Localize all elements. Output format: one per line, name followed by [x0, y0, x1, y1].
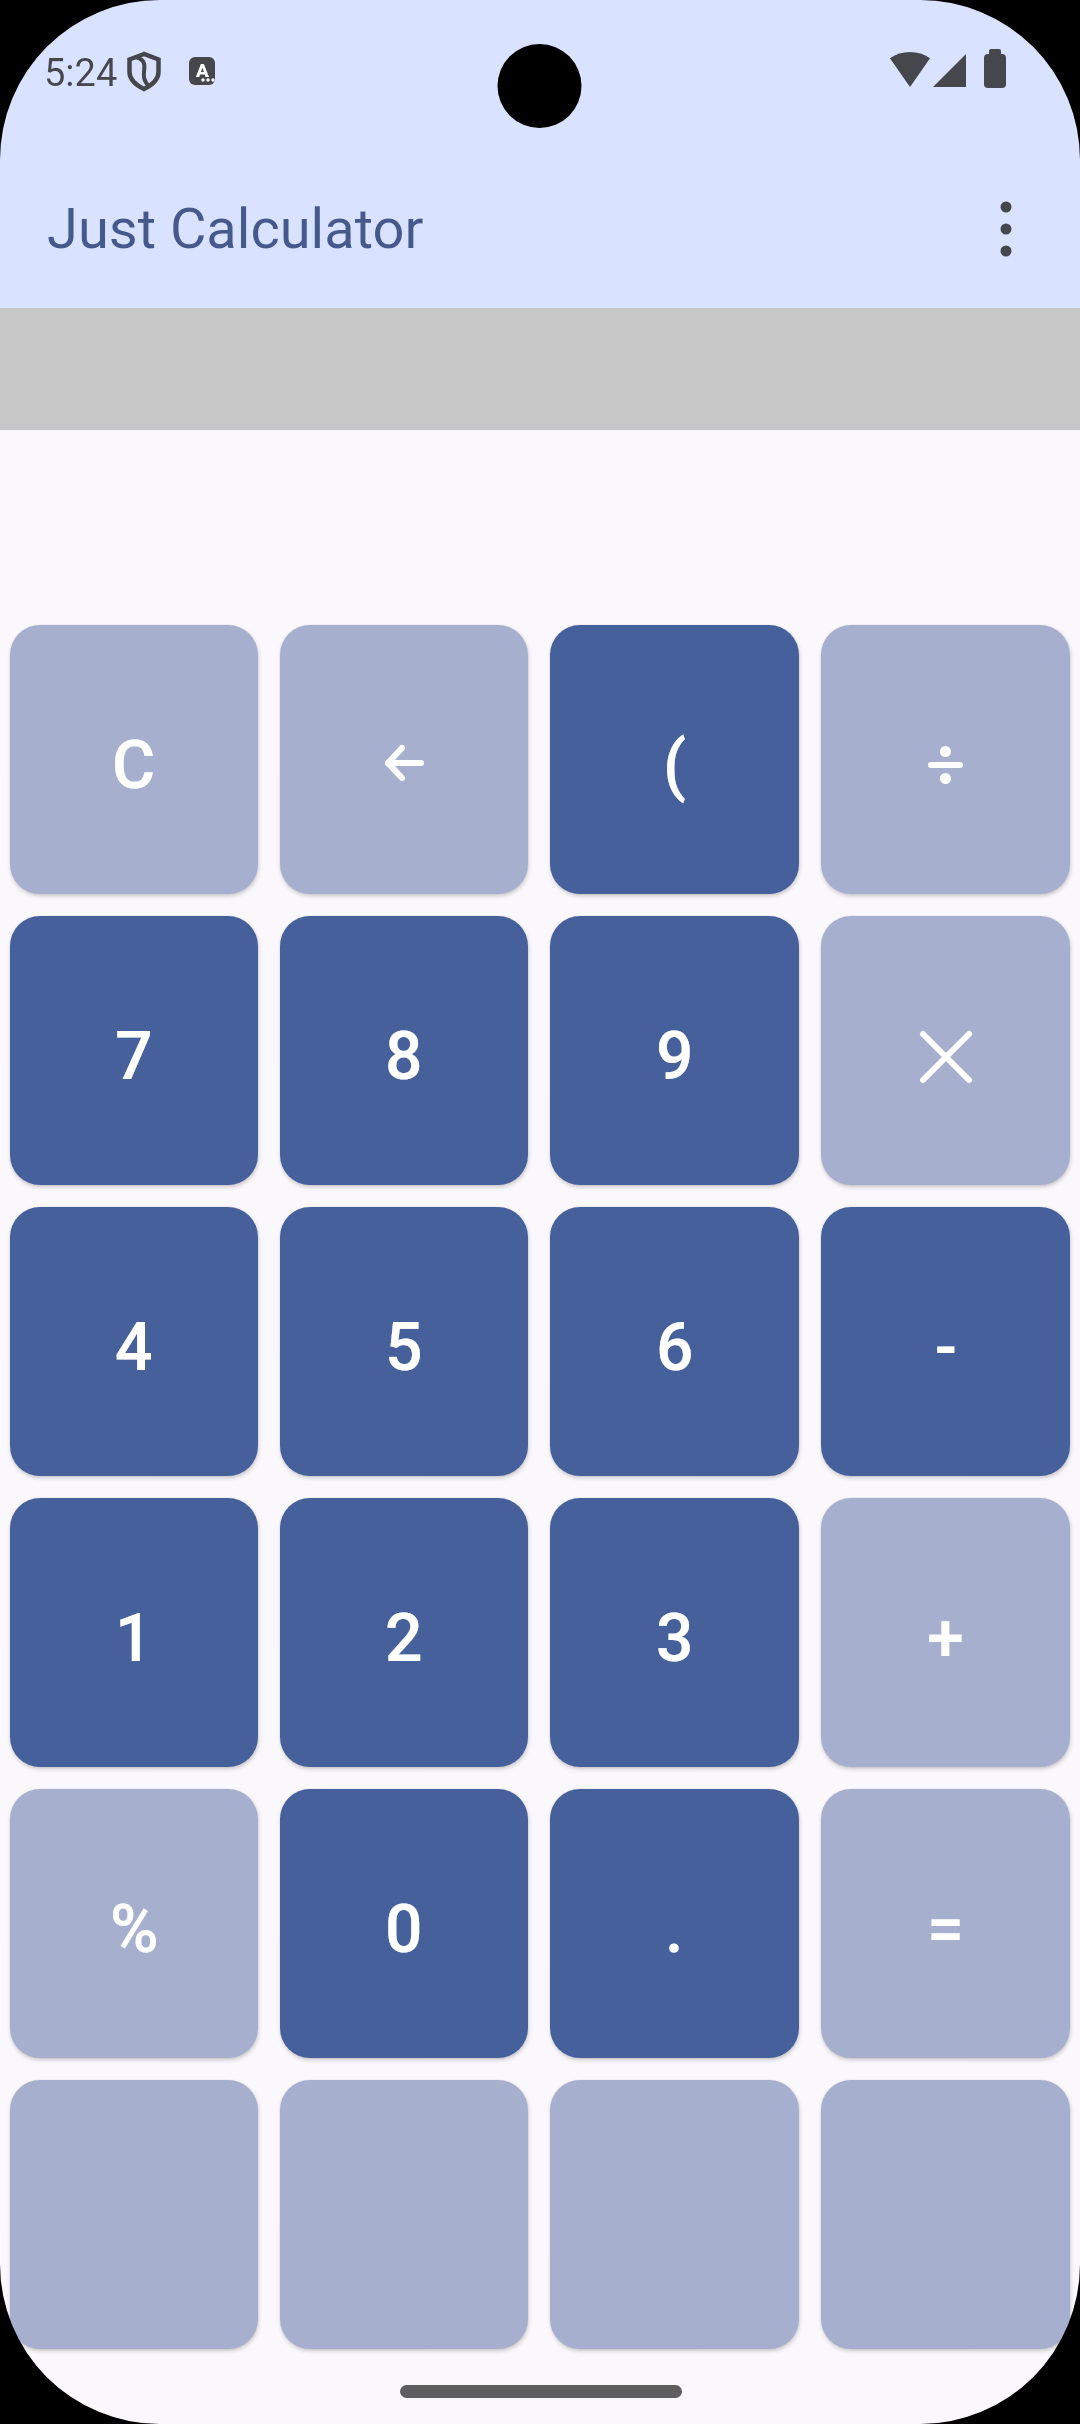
button[interactable] — [10, 2080, 258, 2349]
staticText: 2 — [385, 1600, 423, 1677]
button[interactable]: 2 — [280, 1498, 528, 1767]
staticText: 9 — [656, 1018, 694, 1095]
button[interactable]: 0 — [280, 1789, 528, 2058]
button[interactable]: 9 — [550, 916, 799, 1185]
button[interactable]: = — [821, 1789, 1070, 2058]
staticText: 1 — [115, 1600, 153, 1677]
button[interactable]: 3 — [550, 1498, 799, 1767]
staticText: 6 — [656, 1309, 694, 1386]
staticText: Just Calculator — [47, 196, 424, 262]
button[interactable]: 4 — [10, 1207, 258, 1476]
staticText: ( — [663, 727, 687, 804]
staticText: . — [665, 1891, 684, 1968]
staticText: 0 — [385, 1891, 423, 1968]
button[interactable]: ( — [550, 625, 799, 894]
button[interactable] — [821, 916, 1070, 1185]
button[interactable] — [280, 625, 528, 894]
button[interactable]: 1 — [10, 1498, 258, 1767]
staticText: A — [196, 59, 209, 81]
button[interactable]: C — [10, 625, 258, 894]
button[interactable] — [966, 189, 1046, 269]
staticText: = — [927, 1891, 964, 1968]
staticText: - — [935, 1309, 957, 1386]
button[interactable]: 8 — [280, 916, 528, 1185]
button[interactable]: 6 — [550, 1207, 799, 1476]
staticText: 8 — [385, 1018, 423, 1095]
button[interactable]: 7 — [10, 916, 258, 1185]
button[interactable] — [550, 2080, 799, 2349]
button[interactable]: . — [550, 1789, 799, 2058]
staticText: 5:24 — [44, 51, 118, 96]
staticText: C — [112, 727, 156, 804]
button[interactable] — [821, 625, 1070, 894]
button[interactable]: + — [821, 1498, 1070, 1767]
staticText: % — [110, 1891, 159, 1968]
button[interactable]: 5 — [280, 1207, 528, 1476]
staticText: 7 — [115, 1018, 153, 1095]
staticText: + — [927, 1600, 964, 1677]
button[interactable] — [280, 2080, 528, 2349]
button[interactable]: % — [10, 1789, 258, 2058]
staticText: 4 — [115, 1309, 153, 1386]
staticText: 3 — [656, 1600, 694, 1677]
button[interactable] — [821, 2080, 1070, 2349]
staticText: 5 — [385, 1309, 423, 1386]
button[interactable]: - — [821, 1207, 1070, 1476]
